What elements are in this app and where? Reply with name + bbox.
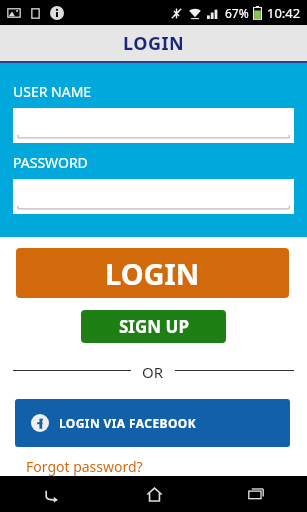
button[interactable]: Back [0,476,103,512]
button[interactable]: SIGN UP [81,310,226,343]
button[interactable]: LOGIN VIA FACEBOOK [15,399,290,447]
staticText: 10:42 [267,4,301,22]
button[interactable]: Forgot password? [13,457,294,476]
staticText: SIGN UP [119,315,189,338]
button[interactable] [13,108,294,143]
staticText: LOGIN VIA FACEBOOK [59,415,197,431]
staticText: 67% [225,5,249,21]
staticText: LOGIN [123,31,185,56]
button[interactable]: Home [103,476,205,512]
button[interactable]: Recent apps [205,476,307,512]
button[interactable]: LOGIN [16,248,289,298]
staticText: OR [142,362,164,378]
staticText: LOGIN [105,254,200,293]
button[interactable] [13,179,294,214]
staticText: Forgot password? [26,457,143,476]
staticText: USER NAME [13,82,92,101]
staticText: PASSWORD [13,153,88,172]
